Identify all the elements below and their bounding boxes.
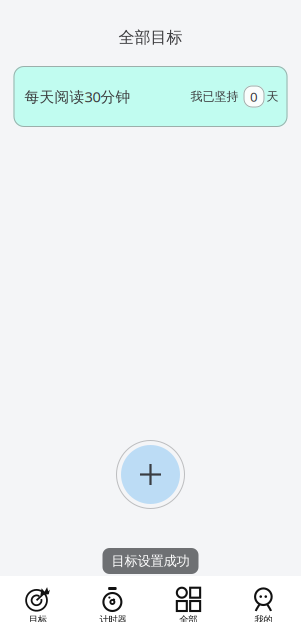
button[interactable]: 目标 [0,576,75,622]
staticText: 0 [250,88,258,105]
staticText: 计时器 [99,614,126,622]
staticText: 我已坚持 [190,89,238,104]
staticText: 目标 [29,614,47,622]
staticText: 全部目标 [118,28,182,47]
staticText: 天 [266,89,278,104]
button[interactable]: 计时器 [75,576,150,622]
staticText: 我的 [254,614,272,622]
staticText: 目标设置成功 [111,553,189,569]
button[interactable]: Add goal [116,440,185,509]
button[interactable]: 全部 [150,576,226,622]
staticText: 全部 [179,614,197,622]
staticText: 每天阅读30分钟 [24,87,130,106]
button[interactable]: 我的 [226,576,301,622]
